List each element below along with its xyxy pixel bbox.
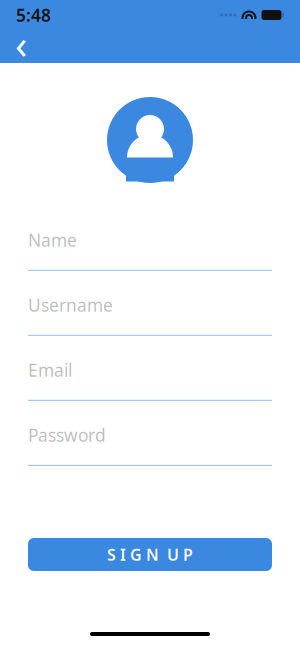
staticText: S I G N U P xyxy=(107,544,193,565)
staticText: Email xyxy=(28,358,72,381)
button[interactable]: Back xyxy=(4,30,38,63)
button[interactable]: S I G N U P xyxy=(28,538,272,571)
staticText: Password xyxy=(28,423,106,446)
staticText: 5:48 xyxy=(16,3,51,26)
staticText: Username xyxy=(28,293,113,316)
staticText: Name xyxy=(28,228,77,251)
staticText: ‹ xyxy=(15,17,27,70)
